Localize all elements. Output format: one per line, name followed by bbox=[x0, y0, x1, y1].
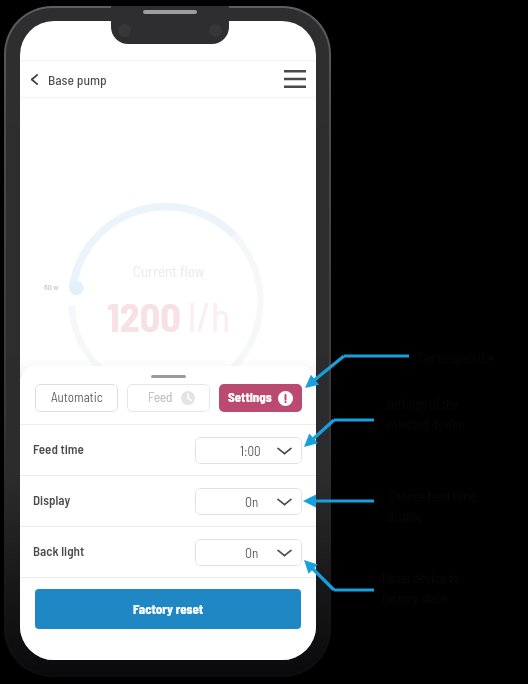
staticText: Automatic bbox=[51, 389, 103, 405]
button[interactable]: Menu bbox=[281, 65, 309, 93]
staticText: Settings bbox=[228, 389, 272, 405]
button[interactable]: Factory reset bbox=[35, 589, 301, 629]
button[interactable]: Feed bbox=[127, 384, 210, 412]
button[interactable]: Back light bbox=[33, 527, 302, 577]
button[interactable]: Display bbox=[33, 476, 302, 526]
staticText: Feed time bbox=[33, 441, 84, 457]
staticText: Factory reset bbox=[133, 601, 204, 617]
staticText: Back light bbox=[33, 543, 85, 559]
button[interactable]: Settings bbox=[219, 384, 302, 412]
staticText: On bbox=[245, 494, 259, 510]
button[interactable]: Back bbox=[23, 68, 45, 90]
staticText: Current flow bbox=[133, 262, 205, 280]
button[interactable]: Feed time bbox=[33, 425, 302, 475]
staticText: Display bbox=[33, 492, 71, 508]
staticText: 1:00 bbox=[240, 443, 261, 459]
staticText: Feed bbox=[148, 389, 173, 405]
staticText: On bbox=[245, 545, 259, 561]
staticText: 60 w bbox=[44, 282, 59, 292]
button[interactable]: Automatic bbox=[35, 384, 118, 412]
staticText: Base pump bbox=[48, 71, 107, 87]
staticText: l/h bbox=[188, 292, 231, 340]
staticText: 1200 bbox=[107, 292, 181, 340]
